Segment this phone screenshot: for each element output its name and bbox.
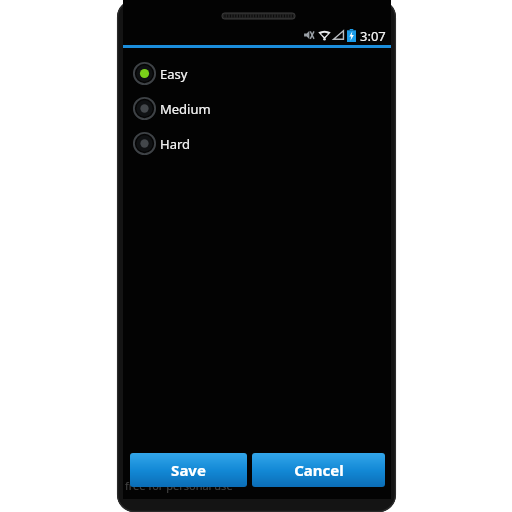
staticText: free for personal use — [125, 478, 233, 493]
staticText: 3:07 — [360, 27, 386, 43]
button[interactable]: Save — [130, 453, 247, 487]
button[interactable]: Hard — [123, 126, 391, 161]
staticText: Save — [171, 460, 206, 480]
button[interactable]: Easy — [123, 56, 391, 91]
staticText: Cancel — [294, 460, 344, 480]
staticText: Medium — [160, 100, 211, 118]
button[interactable]: Cancel — [252, 453, 385, 487]
staticText: Easy — [160, 65, 188, 83]
staticText: Hard — [160, 135, 191, 153]
button[interactable]: Medium — [123, 91, 391, 126]
